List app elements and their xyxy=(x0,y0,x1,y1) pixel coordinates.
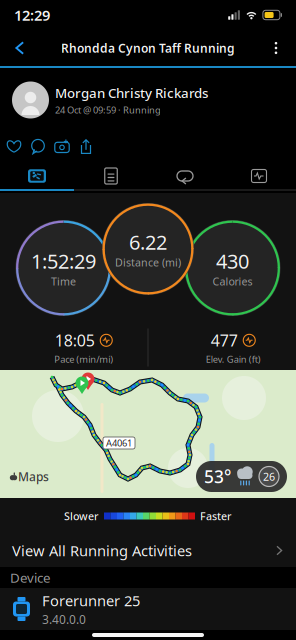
staticText: 3.40.0.0 xyxy=(42,611,86,627)
staticText: Time xyxy=(51,274,76,288)
button[interactable]: Comment xyxy=(26,133,50,159)
staticText: Slower xyxy=(64,509,99,523)
button[interactable]: Charts xyxy=(222,163,296,189)
staticText: 53° xyxy=(204,465,231,488)
staticText: Calories xyxy=(212,274,252,288)
button[interactable]: Share xyxy=(74,133,98,159)
staticText: 430 xyxy=(216,248,249,274)
staticText: Device xyxy=(10,569,51,586)
button[interactable]: Back xyxy=(3,31,37,65)
staticText: Faster xyxy=(200,509,232,523)
staticText: 12:29 xyxy=(14,5,50,25)
staticText: Pace (min/mi) xyxy=(54,353,113,365)
staticText: Maps xyxy=(18,468,49,484)
button[interactable]: Like xyxy=(2,133,26,159)
button[interactable]: View All Running Activities xyxy=(0,534,296,567)
button[interactable]: More options xyxy=(259,31,293,65)
staticText: 18:05 xyxy=(55,330,95,351)
staticText: A4061 xyxy=(106,437,132,449)
button[interactable]: Summary xyxy=(0,163,74,189)
button[interactable]: Details xyxy=(74,163,148,189)
staticText: Morgan Christy Rickards xyxy=(55,84,208,102)
staticText: Elev. Gain (ft) xyxy=(206,353,261,365)
staticText: Rhondda Cynon Taff Running xyxy=(61,40,235,56)
staticText: Forerunner 25 xyxy=(42,591,140,610)
button[interactable]: Laps xyxy=(148,163,222,189)
button[interactable]: Add photos xyxy=(50,133,74,159)
staticText: 477 xyxy=(211,330,238,351)
staticText: View All Running Activities xyxy=(12,541,192,560)
staticText: 26 xyxy=(263,469,275,484)
staticText: 1:52:29 xyxy=(31,248,96,274)
staticText: Distance (mi) xyxy=(115,255,181,269)
button[interactable]: Forerunner 25 xyxy=(0,588,296,630)
staticText: 24 Oct @ 09:59 · Running xyxy=(55,104,161,116)
staticText: 6.22 xyxy=(129,229,167,255)
